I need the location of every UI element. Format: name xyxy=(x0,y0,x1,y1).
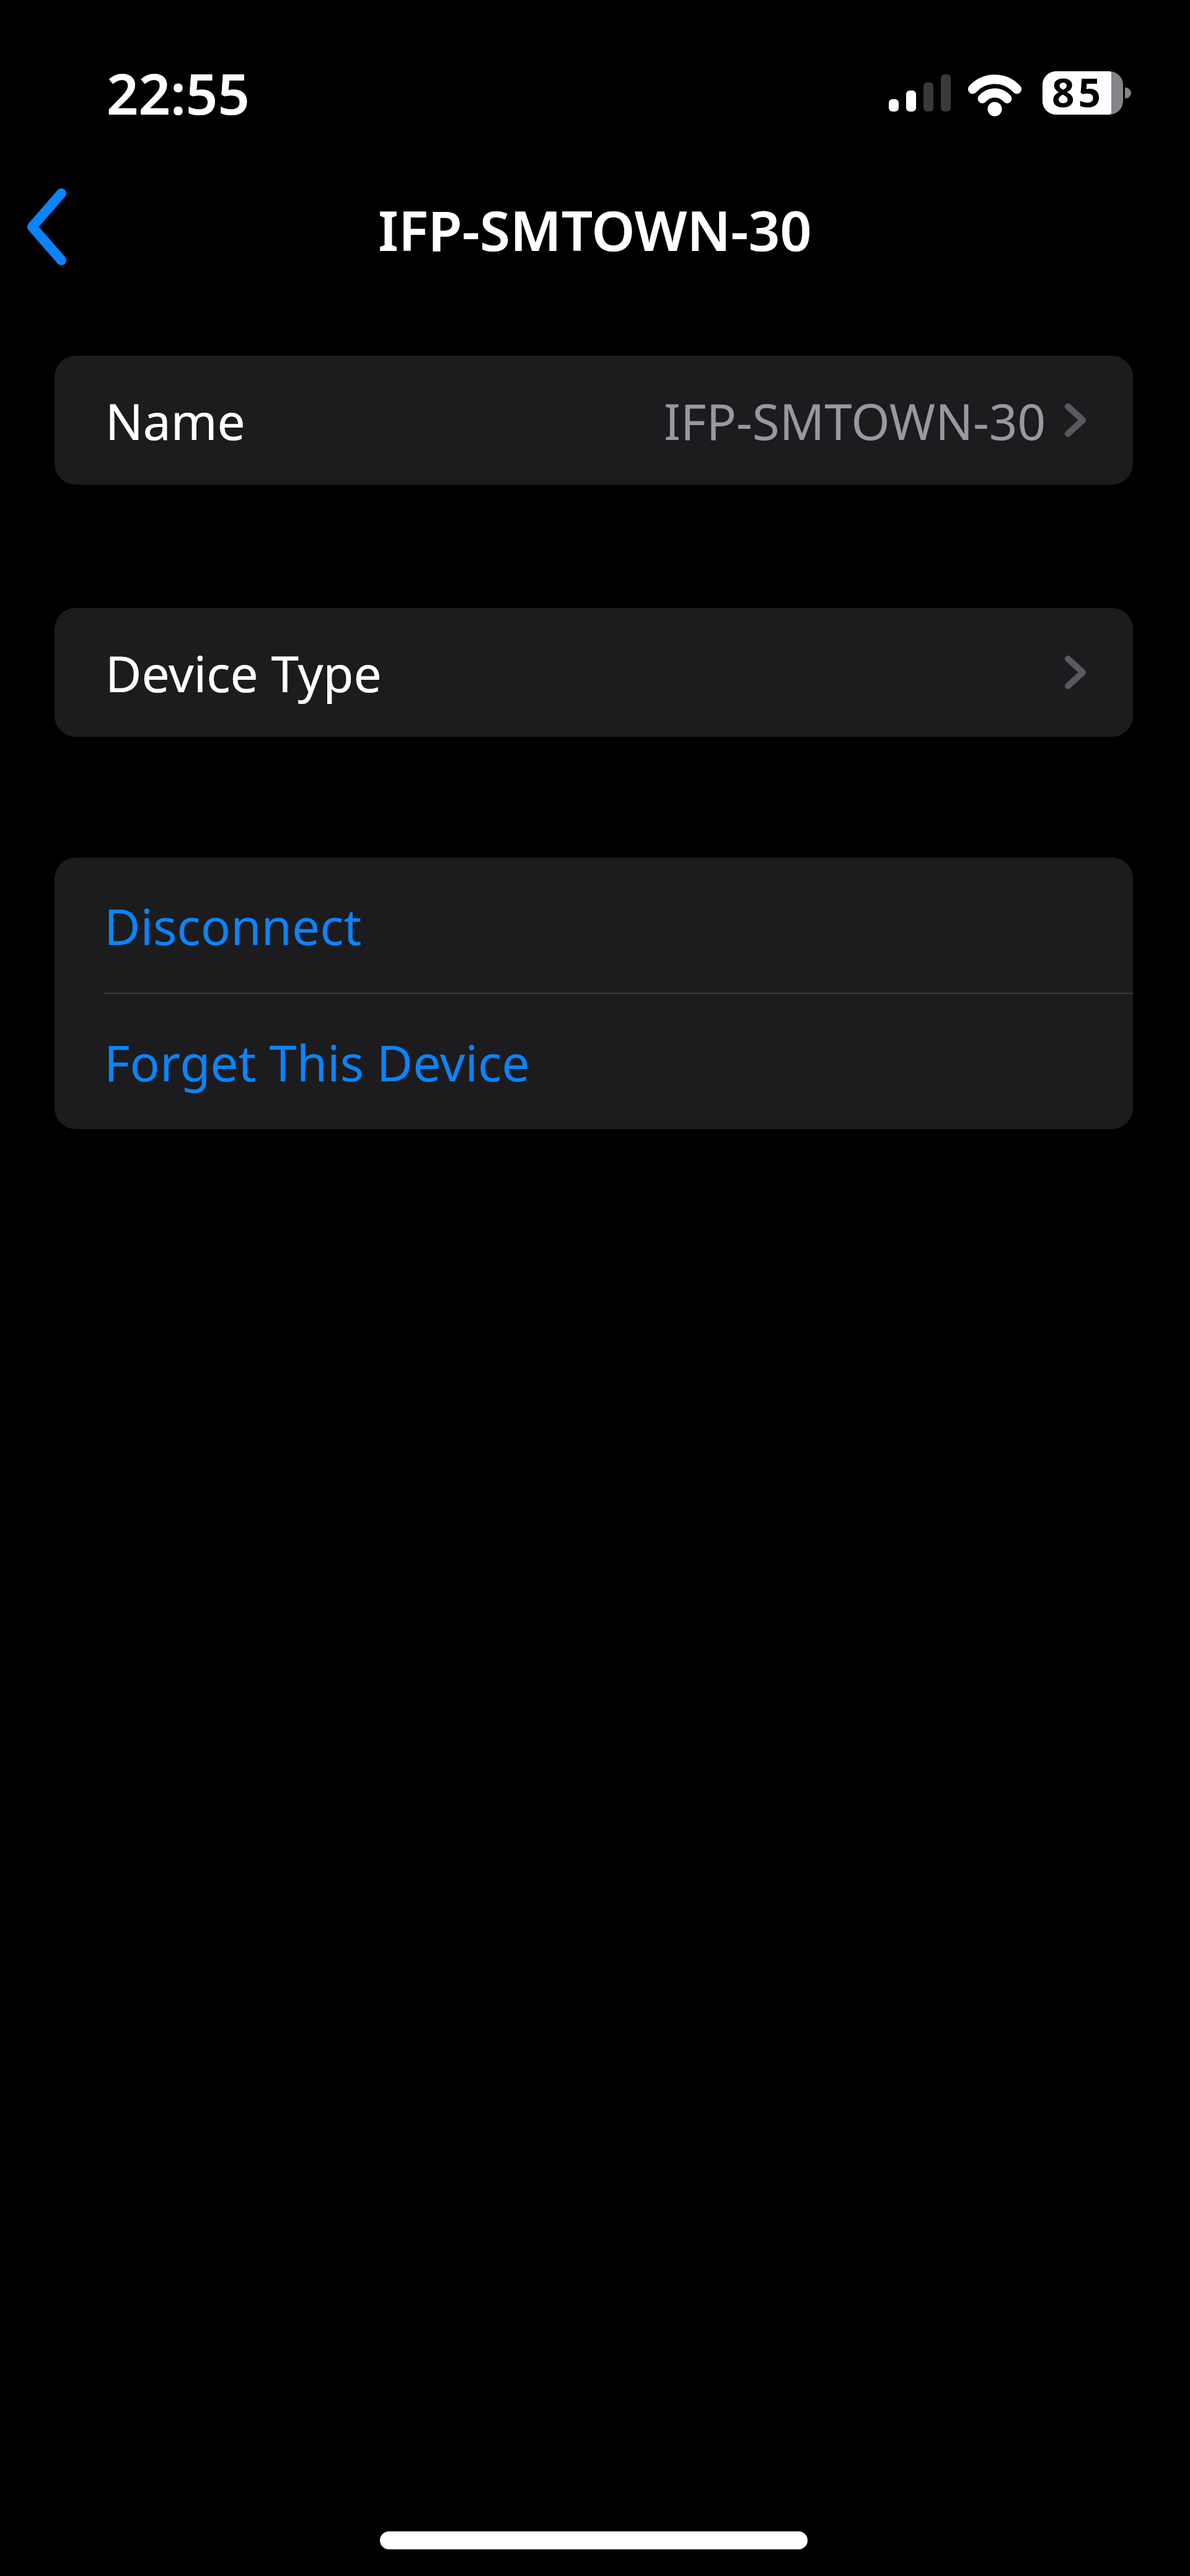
button[interactable]: Device Type xyxy=(55,608,1133,737)
staticText: Forget This Device xyxy=(104,1028,530,1096)
staticText: Disconnect xyxy=(104,892,362,959)
staticText: Name xyxy=(105,387,245,454)
button[interactable]: Name xyxy=(55,356,1133,485)
button[interactable] xyxy=(7,178,87,275)
button[interactable]: Disconnect xyxy=(55,858,1133,993)
staticText: Device Type xyxy=(105,639,382,706)
staticText: IFP-SMTOWN-30 xyxy=(664,387,1046,454)
button[interactable]: Forget This Device xyxy=(55,994,1133,1129)
staticText: 85 xyxy=(1052,65,1105,112)
staticText: 22:55 xyxy=(107,55,250,123)
staticText: IFP-SMTOWN-30 xyxy=(378,192,812,257)
